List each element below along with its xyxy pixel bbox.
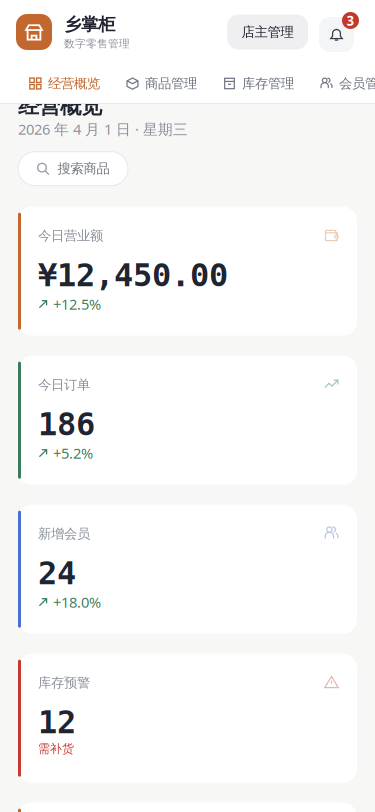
staticText: 今日营业额 [38, 228, 103, 244]
staticText: 店主管理 [241, 24, 293, 40]
staticText: 3 [346, 12, 354, 29]
staticText: 库存预警 [38, 675, 90, 691]
staticText: 乡掌柜 [64, 14, 115, 35]
staticText: 经营概览 [18, 93, 102, 119]
staticText: 需补货 [38, 741, 74, 756]
button[interactable]: 库存管理 [223, 63, 294, 103]
staticText: 搜索商品 [57, 160, 109, 177]
staticText: ¥12,450.00 [38, 257, 228, 293]
staticText: +5.2% [53, 443, 93, 463]
staticText: 24 [38, 555, 76, 591]
staticText: +12.5% [53, 294, 101, 314]
staticText: 2026 年 4 月 1 日 · 星期三 [18, 119, 188, 139]
staticText: 186 [38, 406, 95, 442]
button[interactable]: 搜索商品 [18, 152, 128, 186]
button[interactable]: 经营概览 [29, 63, 100, 103]
button[interactable]: 通知 [319, 12, 359, 52]
button[interactable]: 会员管理 [320, 63, 375, 103]
staticText: 经营概览 [48, 75, 100, 92]
staticText: 库存管理 [242, 75, 294, 92]
button[interactable]: 商品管理 [126, 63, 197, 103]
staticText: +18.0% [53, 592, 101, 612]
staticText: 数字零售管理 [64, 37, 130, 50]
staticText: 今日订单 [38, 377, 90, 393]
button[interactable]: 店主管理 [227, 14, 308, 49]
staticText: 新增会员 [38, 526, 90, 542]
staticText: 商品管理 [145, 75, 197, 92]
staticText: 会员管理 [339, 75, 375, 92]
staticText: 12 [38, 704, 76, 740]
